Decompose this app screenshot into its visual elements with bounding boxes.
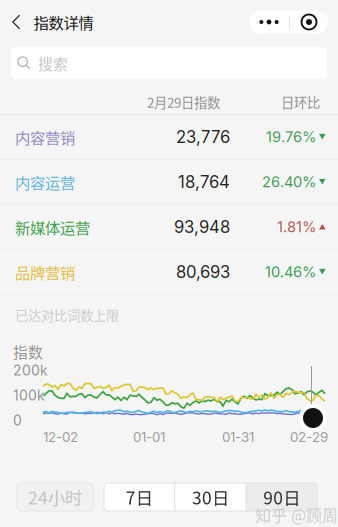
staticText: 指数详情 <box>33 11 93 33</box>
staticText: 7日 <box>126 484 153 510</box>
button[interactable]: Close mini program <box>290 10 328 33</box>
staticText: 02-29 <box>290 429 328 445</box>
staticText: 已达对比词数上限 <box>15 305 119 325</box>
staticText: 18,764 <box>178 172 230 192</box>
staticText: 100k <box>13 387 45 404</box>
staticText: 19.76% <box>266 128 316 146</box>
staticText: 200k <box>13 362 48 379</box>
staticText: 01-01 <box>133 429 165 445</box>
staticText: 10.46% <box>265 263 316 281</box>
button[interactable]: 90日 <box>247 483 317 511</box>
button[interactable]: 24小时 <box>17 483 93 511</box>
staticText: 30日 <box>192 484 229 510</box>
staticText: 日环比 <box>281 92 320 112</box>
staticText: 1.81% <box>277 218 316 236</box>
staticText: 2月29日指数 <box>147 92 220 112</box>
staticText: 24小时 <box>28 484 82 510</box>
staticText: 26.40% <box>262 173 316 191</box>
staticText: 搜索 <box>38 52 68 74</box>
staticText: 93,948 <box>174 217 230 237</box>
staticText: 90日 <box>263 484 300 510</box>
staticText: 知乎 @顾周 <box>255 503 338 526</box>
button[interactable]: 内容营销 <box>0 115 338 160</box>
button[interactable]: More <box>249 10 289 33</box>
staticText: 指数 <box>13 341 43 362</box>
staticText: 内容营销 <box>15 126 75 148</box>
button[interactable]: Back <box>0 5 33 39</box>
staticText: 01-31 <box>222 429 254 445</box>
button[interactable]: 品牌营销 <box>0 250 338 295</box>
button[interactable]: 30日 <box>175 483 246 511</box>
staticText: 12-02 <box>43 429 78 445</box>
button[interactable]: 内容运营 <box>0 160 338 205</box>
staticText: 80,693 <box>176 262 230 282</box>
button[interactable]: 新媒体运营 <box>0 205 338 250</box>
staticText: 内容运营 <box>15 171 75 193</box>
button[interactable]: 7日 <box>104 483 174 511</box>
staticText: 0 <box>13 412 22 429</box>
staticText: 23,776 <box>176 127 230 147</box>
staticText: 新媒体运营 <box>15 216 90 238</box>
staticText: 品牌营销 <box>15 261 75 283</box>
